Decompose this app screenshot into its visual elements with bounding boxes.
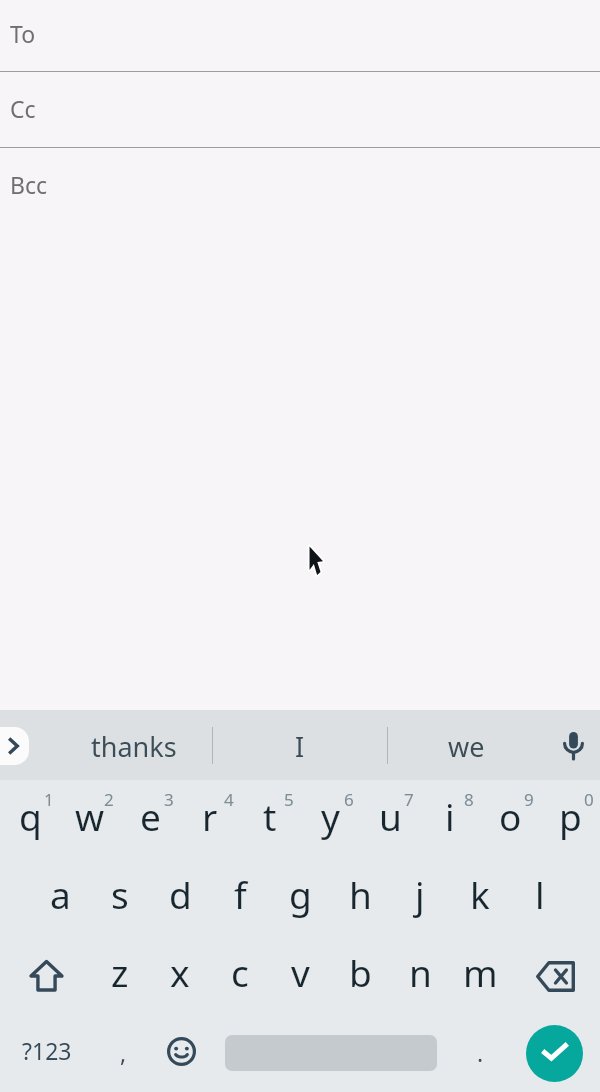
- button[interactable]: we: [388, 710, 548, 780]
- button[interactable]: e: [120, 780, 180, 858]
- button[interactable]: m: [450, 936, 510, 1014]
- staticText: p: [559, 791, 582, 841]
- staticText: 5: [284, 788, 294, 811]
- button[interactable]: i: [420, 780, 480, 858]
- staticText: 4: [224, 788, 234, 811]
- staticText: 0: [584, 788, 594, 811]
- button[interactable]: k: [450, 858, 510, 936]
- button[interactable]: x: [150, 936, 210, 1014]
- staticText: f: [234, 869, 247, 919]
- staticText: I: [295, 728, 305, 765]
- staticText: 9: [524, 788, 534, 811]
- button[interactable]: Shift: [0, 936, 90, 1014]
- staticText: a: [50, 869, 71, 919]
- button[interactable]: To: [0, 0, 600, 71]
- button[interactable]: ?123: [0, 1014, 92, 1092]
- staticText: we: [448, 728, 485, 765]
- staticText: y: [321, 791, 340, 841]
- staticText: b: [349, 947, 372, 997]
- button[interactable]: h: [330, 858, 390, 936]
- staticText: 1: [44, 788, 54, 811]
- staticText: h: [349, 869, 372, 919]
- staticText: i: [445, 791, 455, 841]
- button[interactable]: s: [90, 858, 150, 936]
- button[interactable]: q: [0, 780, 60, 858]
- button[interactable]: b: [330, 936, 390, 1014]
- staticText: g: [289, 869, 312, 919]
- button[interactable]: Send: [526, 1025, 583, 1082]
- staticText: thanks: [91, 728, 177, 765]
- staticText: m: [463, 947, 498, 997]
- button[interactable]: Show more suggestions: [0, 727, 29, 765]
- button[interactable]: u: [360, 780, 420, 858]
- staticText: j: [415, 869, 425, 919]
- button[interactable]: c: [210, 936, 270, 1014]
- staticText: q: [19, 791, 42, 841]
- staticText: 8: [464, 788, 474, 811]
- button[interactable]: thanks: [50, 710, 212, 780]
- button[interactable]: f: [210, 858, 270, 936]
- staticText: r: [202, 791, 218, 841]
- button[interactable]: o: [480, 780, 540, 858]
- button[interactable]: n: [390, 936, 450, 1014]
- button[interactable]: g: [270, 858, 330, 936]
- button[interactable]: z: [90, 936, 150, 1014]
- staticText: 2: [104, 788, 114, 811]
- button[interactable]: r: [180, 780, 240, 858]
- button[interactable]: t: [240, 780, 300, 858]
- staticText: u: [379, 791, 402, 841]
- button[interactable]: j: [390, 858, 450, 936]
- staticText: n: [409, 947, 432, 997]
- button[interactable]: I: [213, 710, 387, 780]
- staticText: c: [231, 947, 249, 997]
- staticText: ?123: [22, 1035, 72, 1066]
- staticText: .: [477, 1037, 484, 1068]
- button[interactable]: ,: [92, 1014, 151, 1092]
- staticText: z: [111, 947, 129, 997]
- staticText: 3: [164, 788, 174, 811]
- staticText: To: [10, 18, 36, 49]
- staticText: Cc: [10, 93, 36, 124]
- staticText: e: [140, 791, 161, 841]
- button[interactable]: p: [540, 780, 600, 858]
- button[interactable]: Cc: [0, 72, 600, 147]
- staticText: l: [535, 869, 545, 919]
- staticText: 6: [344, 788, 354, 811]
- button[interactable]: Emoji: [151, 1014, 211, 1092]
- staticText: x: [170, 947, 190, 997]
- button[interactable]: Voice input: [548, 710, 600, 780]
- staticText: s: [111, 869, 129, 919]
- staticText: 7: [404, 788, 414, 811]
- button[interactable]: Bcc: [0, 148, 600, 223]
- button[interactable]: l: [510, 858, 570, 936]
- staticText: ,: [120, 1037, 127, 1068]
- staticText: k: [470, 869, 490, 919]
- button[interactable]: .: [451, 1014, 509, 1092]
- button[interactable]: Backspace: [510, 936, 600, 1014]
- staticText: Bcc: [10, 169, 48, 200]
- button[interactable]: y: [300, 780, 360, 858]
- button[interactable]: d: [150, 858, 210, 936]
- button[interactable]: w: [60, 780, 120, 858]
- staticText: o: [499, 791, 522, 841]
- button[interactable]: a: [30, 858, 90, 936]
- staticText: d: [169, 869, 192, 919]
- button[interactable]: v: [270, 936, 330, 1014]
- staticText: v: [291, 947, 310, 997]
- staticText: w: [75, 791, 105, 841]
- staticText: t: [263, 791, 277, 841]
